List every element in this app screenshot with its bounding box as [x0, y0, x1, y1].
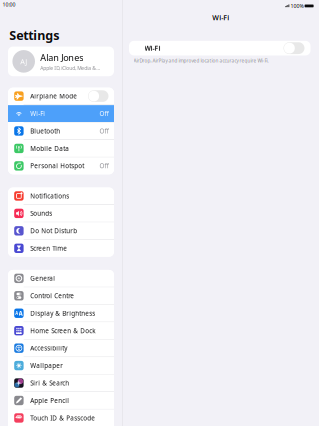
staticText: Personal Hotspot: [30, 162, 84, 170]
button[interactable]: Wi-Fi: [8, 105, 114, 122]
staticText: Home Screen & Dock: [30, 326, 95, 335]
staticText: Wi-Fi: [144, 44, 160, 53]
staticText: Wallpaper: [30, 361, 63, 370]
button[interactable]: A: [8, 305, 114, 322]
staticText: AirDrop, AirPlay and improved location a…: [133, 57, 268, 64]
button[interactable]: AJ: [8, 47, 114, 76]
staticText: Wi-Fi: [30, 109, 45, 118]
staticText: Mobile Data: [30, 144, 69, 153]
staticText: General: [30, 274, 55, 283]
button[interactable]: Accessibility: [8, 340, 114, 357]
staticText: Wi-Fi: [212, 13, 229, 22]
button[interactable]: Siri & Search: [8, 375, 114, 391]
staticText: Off: [99, 109, 108, 118]
button[interactable]: Bluetooth: [8, 123, 114, 139]
staticText: Siri & Search: [30, 379, 69, 387]
button[interactable]: Home Screen & Dock: [8, 322, 114, 339]
staticText: Alan Jones: [40, 51, 83, 63]
staticText: Do Not Disturb: [30, 227, 77, 235]
staticText: Airplane Mode: [30, 92, 77, 100]
button[interactable]: Do Not Disturb: [8, 222, 114, 239]
button[interactable]: Screen Time: [8, 240, 114, 257]
staticText: Screen Time: [30, 244, 67, 252]
staticText: 100%: [290, 2, 303, 9]
button[interactable]: Wi-Fi: [129, 41, 310, 55]
button[interactable]: Notifications: [8, 187, 114, 204]
button[interactable]: Personal Hotspot: [8, 157, 114, 174]
staticText: AJ: [20, 56, 27, 66]
button[interactable]: Wallpaper: [8, 357, 114, 374]
staticText: Sounds: [30, 209, 52, 218]
button[interactable]: Control Centre: [8, 287, 114, 304]
staticText: Off: [99, 127, 108, 135]
staticText: Off: [99, 162, 108, 170]
staticText: Apple ID, iCloud, Media &…: [40, 65, 100, 71]
staticText: Settings: [9, 26, 59, 44]
staticText: Display & Brightness: [30, 309, 95, 317]
button[interactable]: Apple Pencil: [8, 392, 114, 409]
staticText: Accessibility: [30, 344, 67, 352]
button[interactable]: Touch ID & Passcode: [8, 409, 114, 426]
staticText: A: [15, 310, 18, 316]
staticText: A: [19, 309, 23, 317]
button[interactable]: General: [8, 270, 114, 287]
staticText: Apple Pencil: [30, 396, 69, 405]
staticText: 10:00: [3, 1, 16, 8]
button[interactable]: Airplane Mode: [8, 88, 114, 105]
staticText: Bluetooth: [30, 127, 60, 135]
staticText: Notifications: [30, 192, 69, 200]
button[interactable]: Mobile Data: [8, 140, 114, 157]
button[interactable]: Sounds: [8, 205, 114, 222]
staticText: Touch ID & Passcode: [30, 414, 95, 422]
staticText: Control Centre: [30, 291, 74, 300]
